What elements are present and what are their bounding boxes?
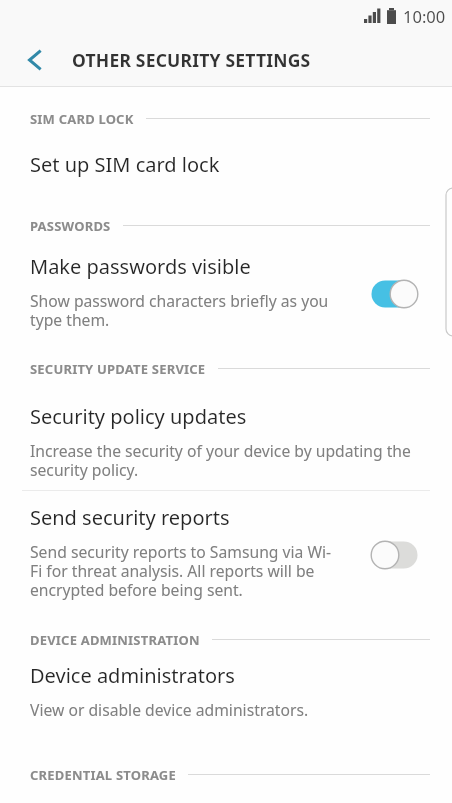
button[interactable]: Security policy updates <box>0 403 452 489</box>
staticText: Show password characters briefly as you … <box>30 290 329 331</box>
staticText: Increase the security of your device by … <box>30 440 411 481</box>
staticText: CREDENTIAL STORAGE <box>30 766 176 783</box>
staticText: Device administrators <box>30 662 235 689</box>
staticText: OTHER SECURITY SETTINGS <box>72 48 311 72</box>
staticText: DEVICE ADMINISTRATION <box>30 631 200 648</box>
staticText: 10:00 <box>403 5 446 27</box>
button[interactable]: Send security reports <box>0 504 452 609</box>
staticText: Set up SIM card lock <box>30 151 220 178</box>
staticText: SECURITY UPDATE SERVICE <box>30 360 206 377</box>
button[interactable]: Set up SIM card lock <box>0 151 452 209</box>
staticText: SIM CARD LOCK <box>30 110 134 127</box>
staticText: View or disable device administrators. <box>30 699 309 720</box>
button[interactable]: Device administrators <box>0 662 452 732</box>
staticText: Send security reports <box>30 504 230 531</box>
staticText: PASSWORDS <box>30 217 111 234</box>
staticText: Make passwords visible <box>30 253 251 280</box>
staticText: Send security reports to Samsung via Wi-… <box>30 541 332 601</box>
staticText: Security policy updates <box>30 403 247 430</box>
button[interactable] <box>371 540 419 570</box>
button[interactable] <box>371 279 419 309</box>
button[interactable] <box>28 50 41 70</box>
button[interactable]: Make passwords visible <box>0 253 452 345</box>
